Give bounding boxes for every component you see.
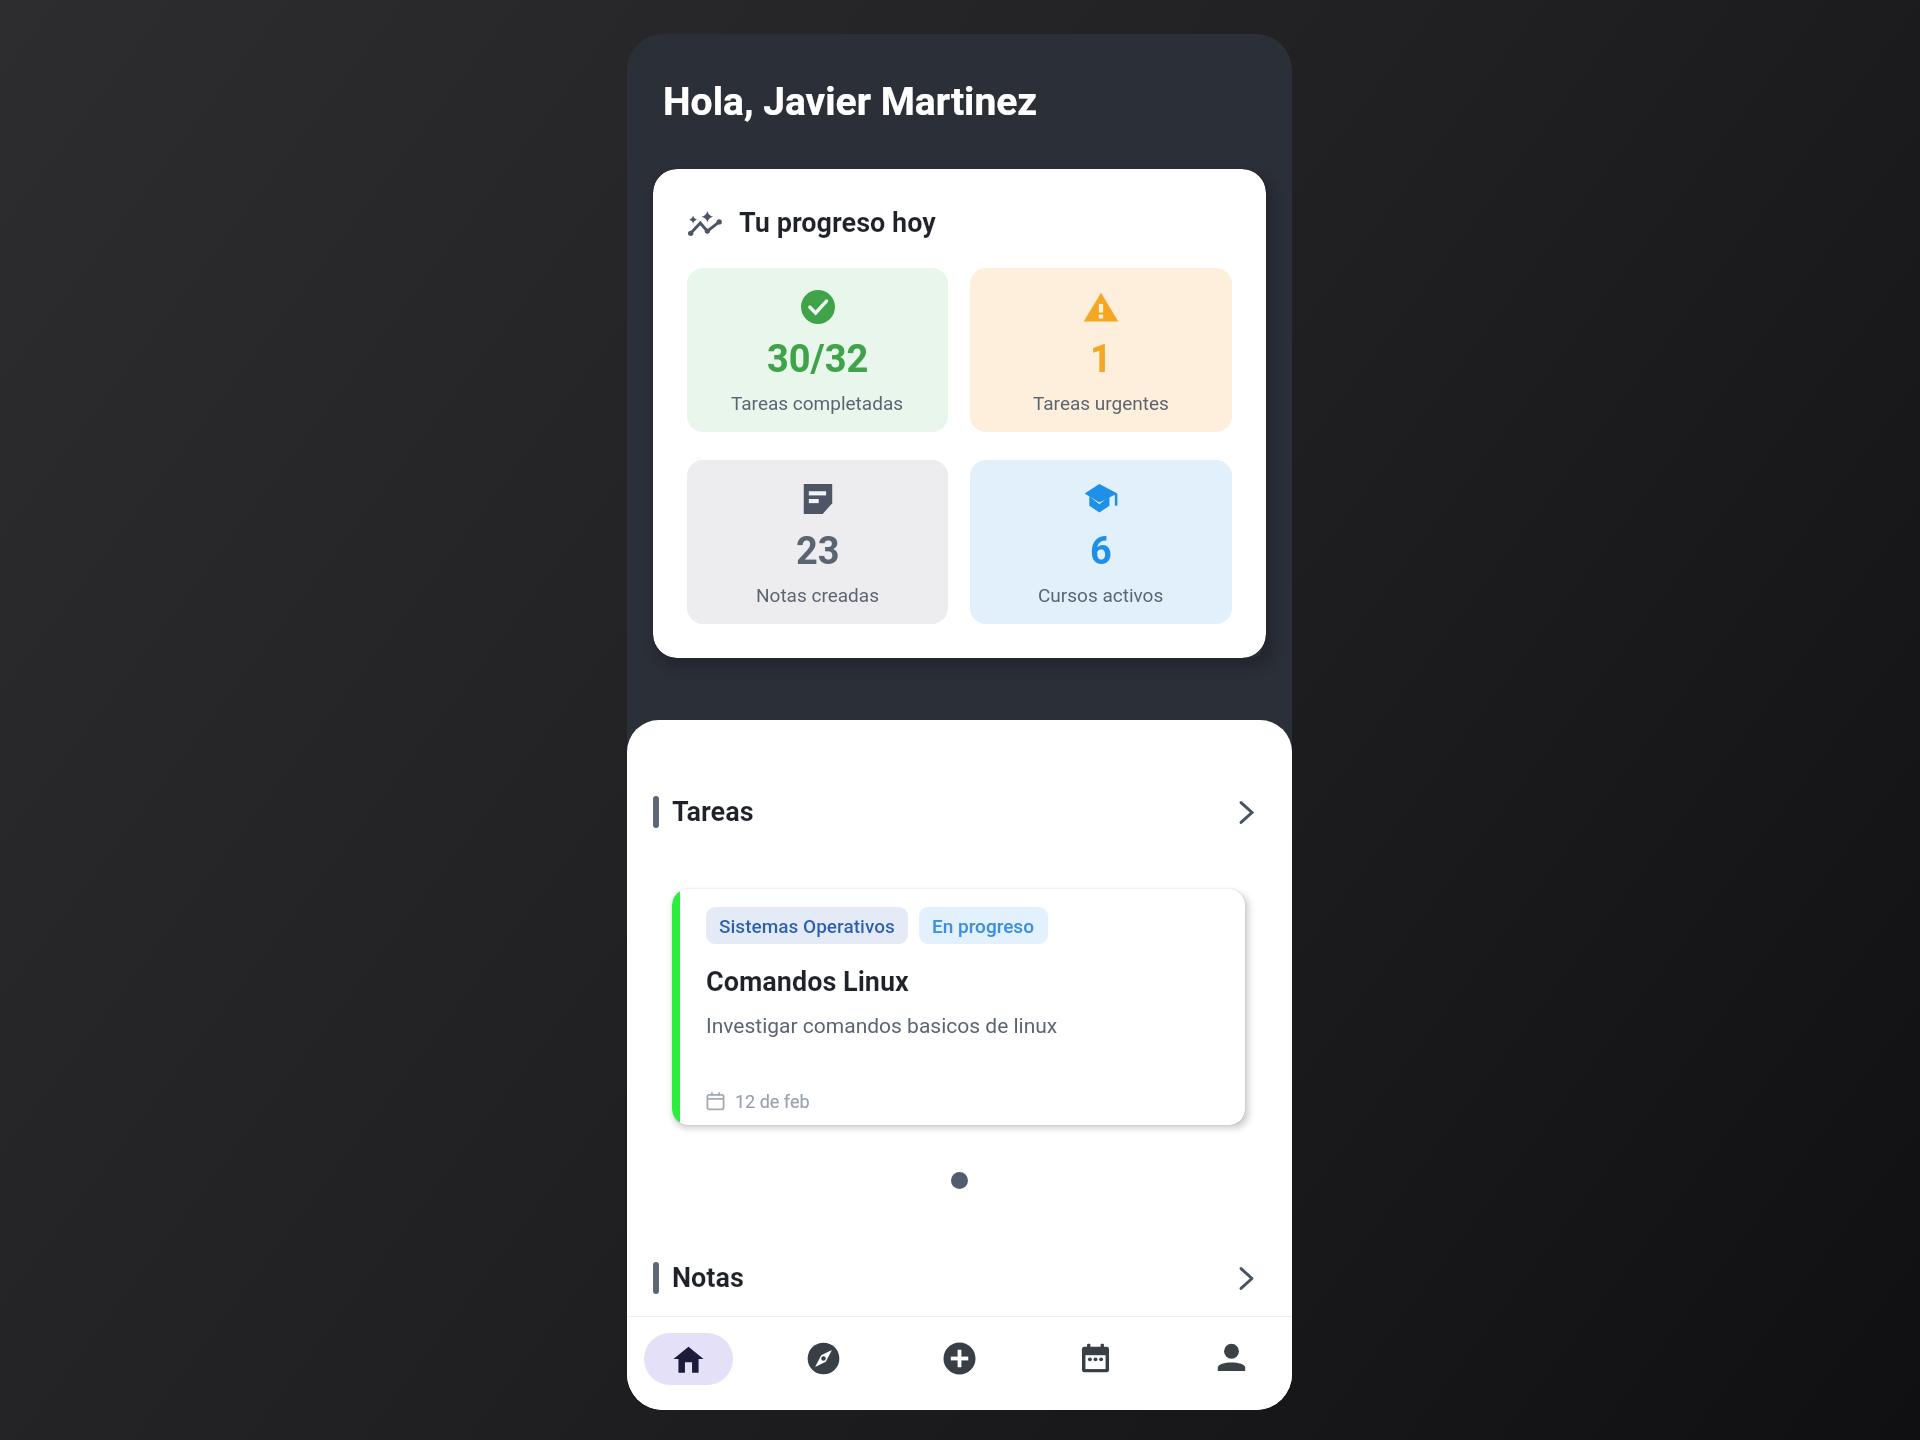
- staticText: 12 de feb: [735, 1091, 810, 1112]
- staticText: 30/32: [767, 337, 869, 382]
- button[interactable]: Sistemas Operativos: [672, 889, 1245, 1125]
- staticText: Tu progreso hoy: [739, 207, 936, 239]
- button[interactable]: 6: [970, 460, 1232, 624]
- button[interactable]: Tareas: [653, 795, 1253, 829]
- button[interactable]: 23: [687, 460, 948, 624]
- staticText: 1: [1090, 337, 1112, 382]
- staticText: Notas: [672, 1262, 744, 1294]
- button[interactable]: Profile: [1163, 1314, 1292, 1403]
- staticText: 23: [796, 529, 840, 574]
- staticText: Investigar comandos basicos de linux: [706, 1014, 1058, 1039]
- staticText: Sistemas Operativos: [719, 915, 895, 937]
- staticText: Tareas urgentes: [1033, 392, 1169, 414]
- staticText: Cursos activos: [1038, 584, 1164, 606]
- staticText: Notas creadas: [756, 584, 879, 606]
- button[interactable]: Home: [644, 1333, 733, 1385]
- staticText: 6: [1090, 529, 1112, 574]
- button[interactable]: Calendar: [1027, 1314, 1163, 1403]
- button[interactable]: Explore: [756, 1314, 891, 1403]
- button[interactable]: 1: [970, 268, 1232, 432]
- staticText: En progreso: [932, 915, 1035, 937]
- button[interactable]: Add: [891, 1314, 1027, 1403]
- button[interactable]: 30/32: [687, 268, 948, 432]
- staticText: Hola, Javier Martinez: [663, 79, 1038, 125]
- staticText: Tareas completadas: [731, 392, 904, 414]
- staticText: Comandos Linux: [706, 966, 909, 998]
- button[interactable]: Notas: [653, 1261, 1253, 1295]
- staticText: Tareas: [672, 796, 754, 828]
